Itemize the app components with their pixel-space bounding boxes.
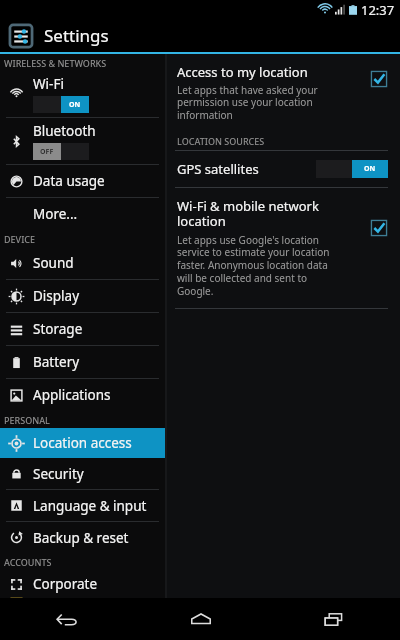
button[interactable]: Storage <box>0 313 165 345</box>
button[interactable]: Language & input <box>0 490 165 521</box>
staticText: Language & input <box>33 497 147 515</box>
staticText: Wi-Fi & mobile network location <box>177 197 319 230</box>
button[interactable]: Battery <box>0 346 165 378</box>
staticText: PERSONAL <box>4 414 50 426</box>
staticText: More... <box>33 205 78 223</box>
button[interactable]: Home <box>134 598 267 640</box>
staticText: Corporate <box>33 575 98 593</box>
button[interactable]: Access to my location <box>167 54 400 131</box>
staticText: Access to my location <box>177 63 308 81</box>
button[interactable]: More... <box>0 198 165 230</box>
staticText: Backup & reset <box>33 529 129 547</box>
staticText: ACCOUNTS <box>4 556 52 568</box>
button[interactable]: OFF <box>33 143 89 160</box>
staticText: Battery <box>33 353 80 371</box>
button[interactable]: Location access <box>0 428 165 458</box>
button[interactable]: Backup & reset <box>0 522 165 553</box>
button[interactable]: GPS satellites <box>167 151 400 187</box>
button[interactable]: Applications <box>0 379 165 411</box>
staticText: Security <box>33 465 84 483</box>
button[interactable]: Recent apps <box>267 598 400 640</box>
staticText: 12:37 <box>361 1 395 19</box>
staticText: Let apps that have asked your permission… <box>177 83 318 122</box>
staticText: LOCATION SOURCES <box>177 135 265 147</box>
staticText: GPS satellites <box>177 160 316 178</box>
button[interactable]: Wi-Fi & mobile network location <box>167 188 400 308</box>
staticText: DEVICE <box>4 233 36 245</box>
button[interactable]: Data usage <box>0 165 165 197</box>
button[interactable]: ON <box>316 160 388 178</box>
staticText: WIRELESS & NETWORKS <box>4 57 107 69</box>
staticText: Display <box>33 287 80 305</box>
button[interactable]: Wi-Fi <box>0 71 165 117</box>
button[interactable]: Display <box>0 280 165 312</box>
staticText: Let apps use Google's location service t… <box>177 233 330 298</box>
staticText: Settings <box>44 24 109 47</box>
staticText: Applications <box>33 386 111 404</box>
staticText: OFF <box>40 147 54 157</box>
staticText: Storage <box>33 320 83 338</box>
staticText: Wi-Fi <box>33 75 64 93</box>
button[interactable]: Security <box>0 458 165 489</box>
staticText: ON <box>69 100 81 110</box>
staticText: Sound <box>33 254 74 272</box>
staticText: Location access <box>33 434 132 452</box>
staticText: Bluetooth <box>33 122 96 140</box>
staticText: ON <box>364 164 376 174</box>
button[interactable]: Checkbox, checked <box>370 70 388 88</box>
button[interactable]: Sound <box>0 247 165 279</box>
staticText: Data usage <box>33 172 105 190</box>
button[interactable]: Corporate <box>0 570 165 598</box>
button[interactable]: Checkbox, checked <box>370 219 388 237</box>
button[interactable]: Back <box>0 598 134 640</box>
button[interactable]: ON <box>33 96 89 113</box>
button[interactable]: Bluetooth <box>0 118 165 164</box>
